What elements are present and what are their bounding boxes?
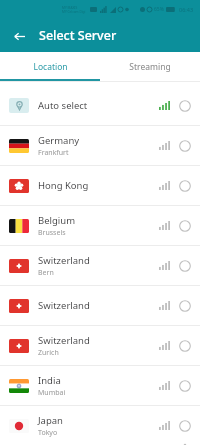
staticText: Location <box>33 61 68 73</box>
button[interactable]: Streaming <box>100 52 200 81</box>
staticText: Auto select <box>38 99 88 112</box>
staticText: Zurich <box>38 348 59 358</box>
staticText: 06:43 <box>179 6 194 13</box>
button[interactable]: Germany <box>0 126 200 166</box>
staticText: Tokyo <box>38 428 58 438</box>
button[interactable]: Japan <box>0 406 200 445</box>
button[interactable]: Belgium <box>0 206 200 246</box>
staticText: Switzerland <box>38 299 90 312</box>
button[interactable]: Hong Kong <box>0 166 200 206</box>
button[interactable]: Auto select <box>0 86 200 126</box>
staticText: Mumbai <box>38 388 66 398</box>
staticText: Streaming <box>129 61 171 73</box>
staticText: Japan <box>38 414 63 427</box>
button[interactable]: Switzerland <box>0 286 200 326</box>
staticText: Hong Kong <box>38 179 89 192</box>
staticText: Switzerland <box>38 254 90 267</box>
staticText: Brussels <box>38 228 66 238</box>
button[interactable]: Location <box>0 52 100 81</box>
staticText: MY MAXIS <box>62 6 78 10</box>
staticText: Select Server <box>39 27 117 44</box>
staticText: Belgium <box>38 214 76 227</box>
staticText: Frankfurt <box>38 148 69 158</box>
button[interactable]: India <box>0 366 200 406</box>
button[interactable]: Switzerland <box>0 326 200 366</box>
button[interactable]: Back <box>8 25 30 47</box>
staticText: India <box>38 374 61 387</box>
button[interactable]: Switzerland <box>0 246 200 286</box>
staticText: Switzerland <box>38 334 90 347</box>
staticText: 65% <box>154 6 164 13</box>
staticText: MY Celcom Digi <box>62 10 86 14</box>
staticText: Germany <box>38 134 80 147</box>
staticText: Bern <box>38 268 54 278</box>
